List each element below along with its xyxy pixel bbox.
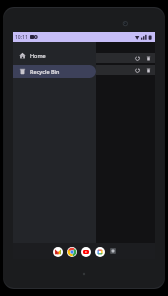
button[interactable]: Restore: [133, 66, 141, 74]
staticText: 10:11: [15, 34, 28, 41]
button[interactable]: Delete forever: [144, 54, 152, 62]
button[interactable]: Restore: [96, 65, 155, 75]
button[interactable]: Home: [13, 49, 96, 62]
button[interactable]: Restore: [133, 54, 141, 62]
button[interactable]: All apps: [109, 247, 117, 255]
button[interactable]: Gmail: [52, 246, 63, 257]
button[interactable]: Recycle Bin: [13, 65, 96, 78]
staticText: Recycle Bin: [30, 68, 60, 75]
button[interactable]: YouTube: [80, 246, 91, 257]
button[interactable]: Restore: [96, 53, 155, 63]
staticText: Home: [30, 52, 46, 59]
button[interactable]: Chrome: [66, 246, 77, 257]
button[interactable]: Photos: [94, 246, 105, 257]
button[interactable]: Delete forever: [144, 66, 152, 74]
